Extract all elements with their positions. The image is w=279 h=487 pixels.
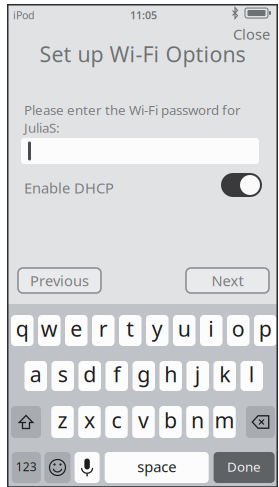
button[interactable]: e — [65, 315, 87, 346]
staticText: i — [208, 314, 214, 343]
staticText: p — [259, 314, 272, 343]
button[interactable]: l — [240, 361, 263, 391]
button[interactable]: Previous — [18, 268, 101, 293]
staticText: e — [70, 314, 82, 343]
staticText: iPod — [13, 8, 35, 22]
button[interactable]: a — [24, 361, 47, 391]
button[interactable]: Dictation — [75, 452, 100, 483]
button[interactable]: c — [105, 406, 128, 438]
button[interactable]: d — [78, 361, 101, 391]
button[interactable]: z — [51, 406, 74, 438]
staticText: Close — [233, 24, 270, 44]
button[interactable]: 123 — [12, 452, 41, 483]
staticText: z — [57, 406, 67, 434]
button[interactable]: Close — [228, 25, 270, 43]
button[interactable]: space — [105, 452, 209, 483]
staticText: l — [249, 360, 255, 388]
staticText: r — [99, 314, 108, 343]
button[interactable]: b — [159, 406, 182, 438]
staticText: d — [83, 360, 96, 388]
button[interactable]: h — [159, 361, 182, 391]
button[interactable]: s — [51, 361, 74, 391]
staticText: s — [58, 360, 68, 388]
staticText: Enable DHCP — [24, 178, 114, 197]
button[interactable]: w — [38, 315, 60, 346]
button[interactable]: k — [213, 361, 236, 391]
button[interactable]: r — [92, 315, 114, 346]
staticText: a — [30, 360, 42, 388]
button[interactable]: Next — [186, 268, 269, 293]
button[interactable]: Done — [214, 452, 275, 483]
button[interactable]: n — [186, 406, 209, 438]
button[interactable]: j — [186, 361, 209, 391]
staticText: Set up Wi-Fi Options — [39, 40, 245, 68]
staticText: o — [232, 314, 245, 343]
staticText: x — [84, 406, 95, 434]
staticText: c — [111, 406, 121, 434]
button[interactable]: Delete — [246, 406, 275, 438]
staticText: w — [41, 314, 58, 343]
button[interactable]: u — [173, 315, 195, 346]
staticText: Next — [211, 271, 243, 290]
staticText: q — [16, 314, 29, 343]
staticText: Please enter the Wi-Fi password for Juli… — [24, 101, 241, 136]
button[interactable]: q — [11, 315, 33, 346]
button[interactable]: i — [200, 315, 222, 346]
staticText: 11:05 — [130, 8, 157, 22]
staticText: b — [164, 406, 177, 434]
staticText: u — [178, 314, 191, 343]
staticText: m — [214, 406, 234, 434]
button[interactable]: g — [132, 361, 155, 391]
staticText: y — [152, 314, 163, 343]
staticText: g — [137, 360, 150, 388]
button[interactable]: y — [146, 315, 168, 346]
staticText: space — [137, 457, 176, 476]
button[interactable]: Shift — [11, 406, 41, 438]
button[interactable]: x — [78, 406, 101, 438]
staticText: Done — [227, 458, 261, 475]
staticText: j — [195, 360, 201, 388]
button[interactable]: v — [132, 406, 155, 438]
staticText: n — [191, 406, 204, 434]
button[interactable]: Emoji — [44, 452, 70, 483]
button[interactable]: f — [105, 361, 128, 391]
staticText: f — [113, 360, 120, 388]
staticText: k — [219, 360, 230, 388]
staticText: h — [164, 360, 177, 388]
button[interactable]: o — [227, 315, 249, 346]
staticText: t — [126, 314, 134, 343]
button[interactable]: Enable DHCP — [221, 173, 262, 197]
button[interactable]: p — [254, 315, 276, 346]
staticText: v — [138, 406, 149, 434]
button[interactable]: m — [213, 406, 236, 438]
button[interactable]: t — [119, 315, 141, 346]
staticText: Previous — [30, 271, 89, 290]
staticText: 123 — [16, 458, 37, 474]
